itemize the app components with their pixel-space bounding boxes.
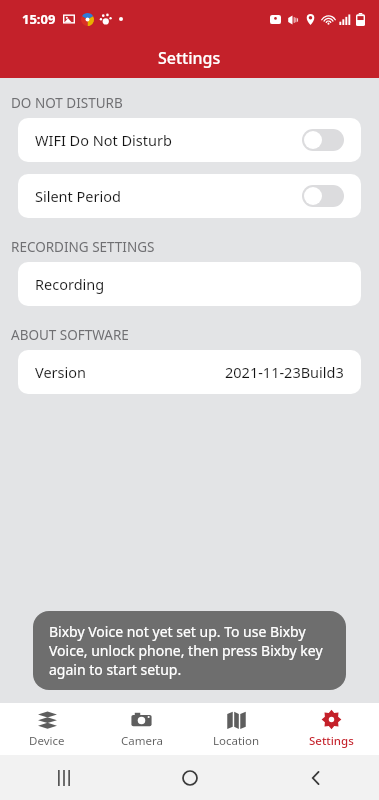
- staticText: Bixby Voice not yet set up. To use Bixby…: [49, 622, 330, 679]
- button[interactable]: Location: [189, 703, 284, 755]
- button[interactable]: Camera: [94, 703, 189, 755]
- button[interactable]: Version: [18, 350, 361, 394]
- staticText: RECORDING SETTINGS: [11, 238, 155, 256]
- button[interactable]: Recents: [0, 755, 127, 800]
- button[interactable]: Recording: [18, 262, 361, 306]
- button[interactable]: Home: [127, 755, 253, 800]
- staticText: Device: [29, 733, 65, 749]
- button[interactable]: Settings: [284, 703, 379, 755]
- staticText: Camera: [121, 733, 163, 749]
- button[interactable]: Device: [0, 703, 94, 755]
- staticText: Recording: [35, 274, 105, 294]
- button[interactable]: WIFI Do Not Disturb: [18, 118, 361, 162]
- staticText: Settings: [158, 47, 221, 69]
- staticText: 2021-11-23Build3: [225, 362, 344, 382]
- button[interactable]: Back: [253, 755, 379, 800]
- staticText: 15:09: [22, 10, 56, 28]
- staticText: ABOUT SOFTWARE: [11, 326, 129, 344]
- staticText: Settings: [309, 733, 354, 749]
- staticText: DO NOT DISTURB: [11, 94, 123, 112]
- staticText: WIFI Do Not Disturb: [35, 130, 172, 150]
- staticText: Version: [35, 362, 86, 382]
- staticText: Silent Period: [35, 186, 121, 206]
- button[interactable]: Silent Period: [18, 174, 361, 218]
- staticText: Location: [213, 733, 260, 749]
